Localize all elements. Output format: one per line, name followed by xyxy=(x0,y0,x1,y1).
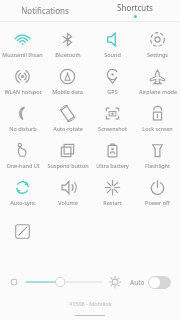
button[interactable]: Lock screen xyxy=(135,101,180,138)
staticText: Notifications xyxy=(21,5,69,16)
button[interactable]: Airplane mode xyxy=(135,64,180,101)
staticText: Mobile data xyxy=(52,88,83,95)
staticText: Volume xyxy=(58,199,78,206)
button[interactable]: Settings xyxy=(135,27,180,64)
staticText: Shortcuts xyxy=(117,2,153,13)
button[interactable]: Auto brightness toggle xyxy=(148,276,171,289)
staticText: One-hand UI xyxy=(6,162,40,169)
button[interactable]: Shortcuts xyxy=(90,0,180,20)
button[interactable]: Auto-rotate xyxy=(45,101,90,138)
button[interactable]: Screenshot xyxy=(90,101,135,138)
button[interactable]: Ultra battery xyxy=(90,138,135,175)
staticText: Suspend button xyxy=(47,162,89,169)
button[interactable]: Power off xyxy=(135,175,180,212)
staticText: Settings xyxy=(147,51,168,58)
button[interactable]: No disturb xyxy=(0,101,45,138)
button[interactable]: Restart xyxy=(90,175,135,212)
staticText: Power off xyxy=(145,199,170,206)
button[interactable]: Mobile data xyxy=(45,64,90,101)
staticText: Restart xyxy=(103,199,122,206)
staticText: Flashlight xyxy=(145,162,170,169)
button[interactable]: Bluetooth xyxy=(45,27,90,64)
staticText: Ultra battery xyxy=(96,162,129,169)
staticText: Auto-rotate xyxy=(53,125,83,132)
button[interactable]: Muzzamil Ihsan xyxy=(0,27,45,64)
staticText: 41506 - Mobilink xyxy=(69,300,112,307)
button[interactable]: Flashlight xyxy=(135,138,180,175)
button[interactable]: Notifications xyxy=(0,0,90,20)
staticText: Auto xyxy=(130,278,145,287)
button[interactable]: Suspend button xyxy=(45,138,90,175)
staticText: Muzzamil Ihsan xyxy=(2,51,43,58)
staticText: GPS xyxy=(107,88,118,95)
staticText: Bluetooth xyxy=(55,51,81,58)
button[interactable]: Sound xyxy=(90,27,135,64)
staticText: Auto-sync xyxy=(10,199,36,206)
staticText: WLAN hotspot xyxy=(4,88,42,95)
staticText: Airplane mode xyxy=(139,88,177,95)
button[interactable]: Auto-sync xyxy=(0,175,45,212)
button[interactable] xyxy=(26,272,102,292)
button[interactable]: WLAN hotspot xyxy=(0,64,45,101)
button[interactable]: GPS xyxy=(90,64,135,101)
staticText: No disturb xyxy=(9,125,37,132)
staticText: Sound xyxy=(104,51,121,58)
staticText: Lock screen xyxy=(142,125,173,132)
button[interactable]: One-hand UI xyxy=(0,138,45,175)
button[interactable]: Volume xyxy=(45,175,90,212)
staticText: Screenshot xyxy=(98,125,127,132)
button[interactable]: Edit shortcuts xyxy=(0,216,45,246)
